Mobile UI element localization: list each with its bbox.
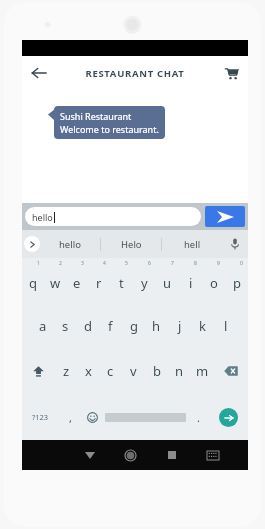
- button[interactable]: l: [214, 303, 237, 348]
- staticText: a: [39, 317, 47, 335]
- staticText: i: [189, 274, 193, 292]
- button[interactable]: ?123: [22, 394, 59, 440]
- staticText: r: [96, 274, 102, 292]
- staticText: 0: [240, 260, 243, 267]
- staticText: Sushi Restaurant: [60, 110, 132, 122]
- button[interactable]: Keyboard: [192, 440, 233, 470]
- button[interactable]: Home: [110, 440, 151, 470]
- button[interactable]: hello: [25, 207, 201, 226]
- staticText: v: [130, 362, 137, 380]
- staticText: y: [141, 274, 148, 292]
- button[interactable]: b: [145, 348, 168, 394]
- button[interactable]: Emoji: [81, 394, 103, 440]
- staticText: Welcome to restaurant.: [60, 123, 159, 135]
- button[interactable]: Backspace: [214, 348, 248, 394]
- staticText: RESTAURANT CHAT: [85, 67, 185, 80]
- button[interactable]: x: [77, 348, 99, 394]
- staticText: 6: [148, 260, 151, 267]
- staticText: h: [152, 317, 161, 335]
- button[interactable]: c: [99, 348, 122, 394]
- staticText: Helo: [121, 238, 142, 251]
- staticText: 8: [194, 260, 197, 267]
- staticText: 5: [125, 260, 128, 267]
- button[interactable]: Enter: [209, 394, 248, 440]
- button[interactable]: Shift: [22, 348, 55, 394]
- staticText: o: [210, 274, 218, 292]
- staticText: e: [73, 274, 81, 292]
- staticText: 3: [81, 260, 84, 267]
- button[interactable]: 0: [225, 258, 248, 303]
- button[interactable]: f: [99, 303, 122, 348]
- staticText: z: [63, 362, 70, 380]
- button[interactable]: Back: [22, 56, 56, 90]
- button[interactable]: 6: [133, 258, 156, 303]
- button[interactable]: h: [145, 303, 168, 348]
- button[interactable]: 5: [110, 258, 133, 303]
- button[interactable]: k: [191, 303, 214, 348]
- staticText: hell: [184, 238, 201, 251]
- staticText: l: [224, 317, 228, 335]
- staticText: t: [119, 274, 124, 292]
- button[interactable]: Send: [205, 206, 245, 227]
- button[interactable]: Helo: [101, 230, 161, 258]
- button[interactable]: a: [32, 303, 54, 348]
- staticText: d: [84, 317, 92, 335]
- staticText: ,: [69, 410, 72, 425]
- button[interactable]: More suggestions: [24, 236, 40, 252]
- button[interactable]: 7: [156, 258, 179, 303]
- button[interactable]: hello: [40, 230, 100, 258]
- button[interactable]: Sushi Restaurant: [48, 106, 165, 139]
- button[interactable]: n: [168, 348, 191, 394]
- staticText: f: [108, 317, 113, 335]
- staticText: u: [163, 274, 172, 292]
- button[interactable]: Voice input: [222, 230, 248, 258]
- button[interactable]: hell: [162, 230, 222, 258]
- staticText: hello: [32, 211, 53, 223]
- staticText: 9: [217, 260, 220, 267]
- button[interactable]: ,: [59, 394, 81, 440]
- staticText: 1: [37, 260, 40, 267]
- button[interactable]: 1: [22, 258, 44, 303]
- button[interactable]: v: [122, 348, 145, 394]
- button[interactable]: s: [54, 303, 76, 348]
- staticText: s: [62, 317, 69, 335]
- staticText: j: [178, 317, 182, 335]
- staticText: c: [107, 362, 114, 380]
- staticText: n: [175, 362, 184, 380]
- staticText: 7: [171, 260, 174, 267]
- staticText: p: [233, 274, 241, 292]
- button[interactable]: 8: [179, 258, 202, 303]
- button[interactable]: 2: [44, 258, 66, 303]
- staticText: q: [29, 274, 37, 292]
- staticText: w: [50, 274, 61, 292]
- button[interactable]: 4: [88, 258, 110, 303]
- staticText: k: [199, 317, 206, 335]
- staticText: x: [85, 362, 92, 380]
- button[interactable]: Space: [103, 394, 187, 440]
- button[interactable]: Recents: [151, 440, 192, 470]
- button[interactable]: m: [191, 348, 214, 394]
- staticText: b: [153, 362, 161, 380]
- staticText: m: [196, 362, 209, 380]
- staticText: .: [197, 410, 200, 425]
- staticText: ?123: [32, 412, 49, 422]
- button[interactable]: j: [168, 303, 191, 348]
- button[interactable]: z: [55, 348, 77, 394]
- button[interactable]: d: [76, 303, 99, 348]
- button[interactable]: 9: [202, 258, 225, 303]
- staticText: hello: [59, 238, 81, 251]
- button[interactable]: g: [122, 303, 145, 348]
- staticText: g: [130, 317, 138, 335]
- button[interactable]: 3: [66, 258, 88, 303]
- button[interactable]: .: [187, 394, 209, 440]
- button[interactable]: Back: [69, 440, 110, 470]
- staticText: 2: [59, 260, 62, 267]
- staticText: 4: [103, 260, 106, 267]
- button[interactable]: Cart: [214, 56, 248, 90]
